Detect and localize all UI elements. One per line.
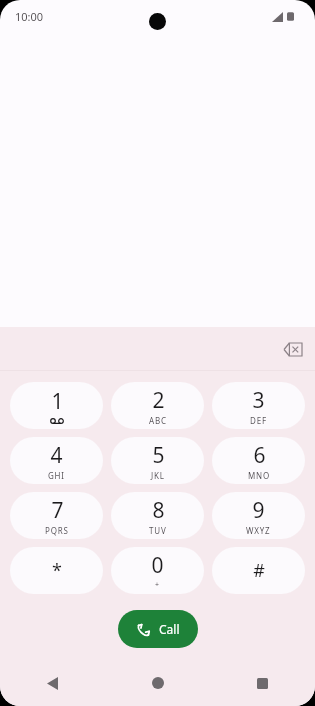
staticText: 7 bbox=[51, 496, 64, 525]
staticText: 9 bbox=[252, 496, 265, 525]
staticText: 1 bbox=[51, 387, 64, 416]
staticText: 2 bbox=[152, 386, 165, 415]
staticText: Call bbox=[159, 621, 180, 637]
staticText: 8 bbox=[152, 496, 165, 525]
staticText: DEF bbox=[250, 415, 267, 426]
button[interactable]: 6 bbox=[212, 437, 305, 484]
button[interactable]: 4 bbox=[10, 437, 103, 484]
staticText: ABC bbox=[149, 415, 167, 426]
button[interactable]: 2 bbox=[111, 382, 204, 429]
button[interactable]: Back bbox=[0, 660, 105, 706]
button[interactable]: 7 bbox=[10, 492, 103, 539]
staticText: 5 bbox=[152, 441, 165, 470]
staticText: TUV bbox=[149, 525, 167, 536]
staticText: + bbox=[155, 580, 160, 590]
button[interactable]: Home bbox=[105, 660, 210, 706]
staticText: GHI bbox=[48, 470, 65, 481]
button[interactable]: 9 bbox=[212, 492, 305, 539]
staticText: 0 bbox=[151, 551, 164, 580]
staticText: WXYZ bbox=[246, 525, 271, 536]
button[interactable]: 0 bbox=[111, 547, 204, 594]
staticText: 10:00 bbox=[15, 9, 44, 24]
staticText: MNO bbox=[248, 470, 270, 481]
button[interactable]: 3 bbox=[212, 382, 305, 429]
button[interactable]: 5 bbox=[111, 437, 204, 484]
button[interactable]: 1 bbox=[10, 382, 103, 429]
button[interactable]: 8 bbox=[111, 492, 204, 539]
staticText: # bbox=[253, 558, 265, 583]
button[interactable]: * bbox=[10, 547, 103, 594]
staticText: 6 bbox=[253, 441, 266, 470]
button[interactable]: Call bbox=[118, 610, 198, 648]
button[interactable]: Recents bbox=[210, 660, 315, 706]
button[interactable]: Backspace bbox=[276, 332, 310, 366]
staticText: * bbox=[52, 558, 62, 583]
staticText: PQRS bbox=[45, 525, 69, 536]
staticText: 4 bbox=[50, 441, 63, 470]
staticText: JKL bbox=[151, 470, 165, 481]
button[interactable]: # bbox=[212, 547, 305, 594]
staticText: 3 bbox=[252, 386, 265, 415]
